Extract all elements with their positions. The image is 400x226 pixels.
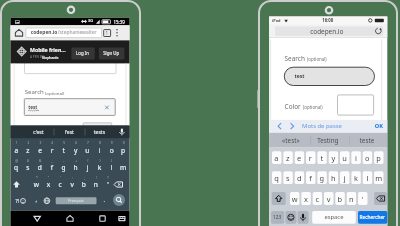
button[interactable] (0, 0, 400, 226)
